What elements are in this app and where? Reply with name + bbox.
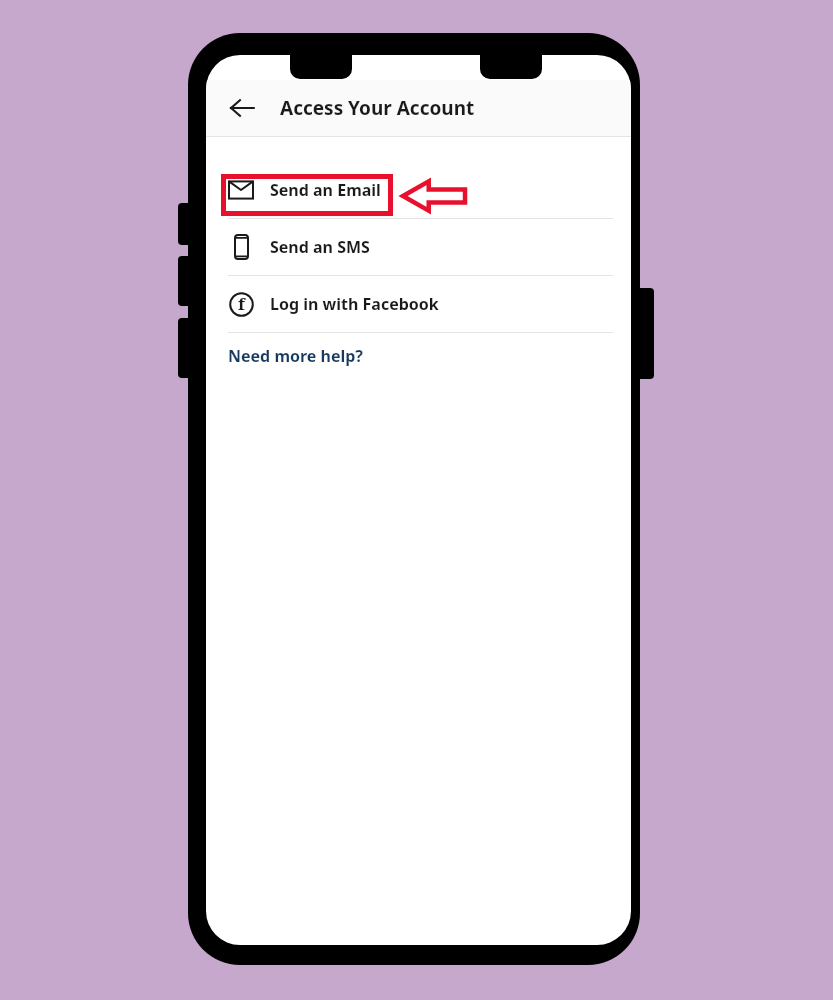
- staticText: Send an Email: [270, 179, 381, 201]
- button[interactable]: f: [206, 276, 631, 332]
- staticText: Log in with Facebook: [270, 293, 439, 315]
- staticText: f: [238, 292, 245, 315]
- button[interactable]: Need more help?: [206, 333, 631, 379]
- staticText: Access Your Account: [280, 95, 475, 121]
- button[interactable]: Send an SMS: [206, 219, 631, 275]
- staticText: Send an SMS: [270, 236, 370, 258]
- staticText: Need more help?: [228, 345, 363, 367]
- button[interactable]: Send an Email: [206, 162, 631, 218]
- button[interactable]: Back: [218, 84, 266, 132]
